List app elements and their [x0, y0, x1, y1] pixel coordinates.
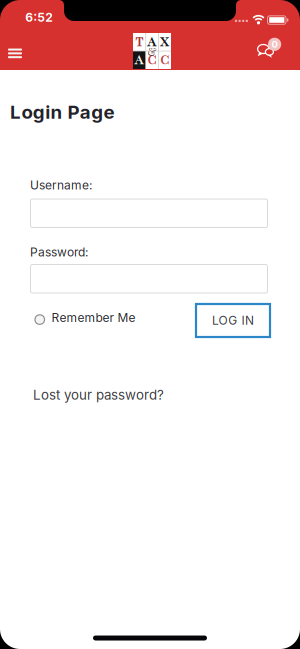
button[interactable]: Menu — [2, 42, 28, 64]
staticText: Username: — [30, 178, 92, 192]
staticText: LOG IN — [212, 313, 254, 328]
staticText: Remember Me — [51, 310, 135, 325]
staticText: Lost your password? — [33, 387, 164, 403]
staticText: 0 — [272, 39, 278, 50]
staticText: A — [147, 33, 157, 51]
staticText: 6:52 — [25, 10, 53, 24]
staticText: T — [135, 33, 143, 51]
staticText: C — [160, 51, 169, 69]
staticText: Login Page — [10, 101, 115, 123]
button[interactable]: Remember Me — [35, 310, 135, 325]
button[interactable]: Lost your password? — [33, 387, 164, 403]
staticText: Password: — [30, 245, 88, 259]
button[interactable]: Messages — [246, 34, 286, 68]
staticText: C — [147, 51, 156, 69]
staticText: & — [147, 44, 156, 59]
staticText: X — [160, 33, 170, 51]
button[interactable]: LOG IN — [196, 304, 270, 337]
staticText: A — [134, 51, 144, 69]
